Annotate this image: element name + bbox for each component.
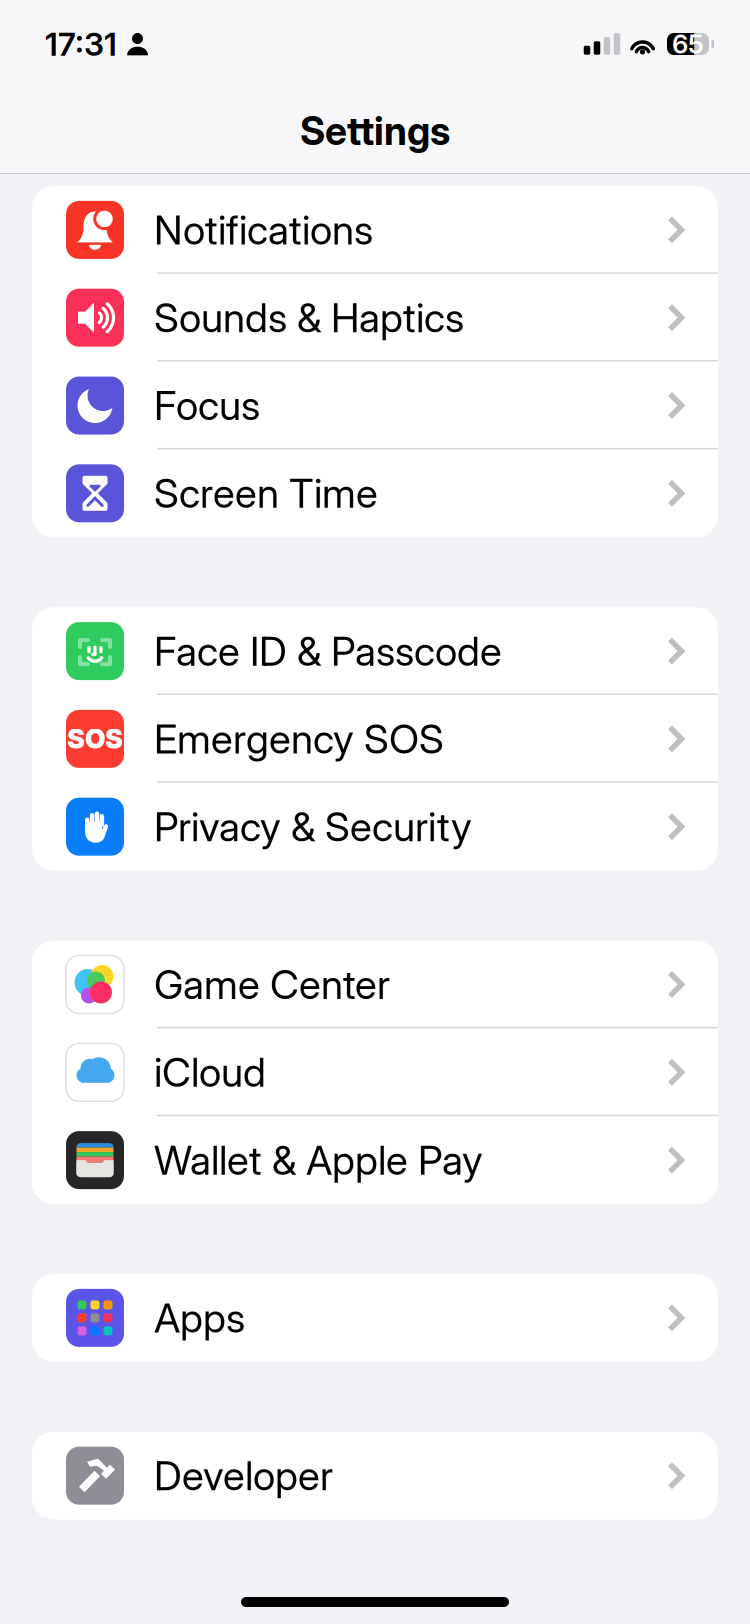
button[interactable]: Apps <box>32 1274 718 1362</box>
staticText: Emergency SOS <box>154 715 444 763</box>
button[interactable]: Developer <box>32 1432 718 1520</box>
button[interactable]: Privacy & Security <box>32 783 718 871</box>
staticText: Face ID & Passcode <box>154 627 502 675</box>
button[interactable]: Wallet & Apple Pay <box>32 1116 718 1204</box>
button[interactable]: iCloud <box>32 1028 718 1116</box>
staticText: Screen Time <box>154 469 378 517</box>
staticText: iCloud <box>154 1048 266 1096</box>
staticText: Settings <box>300 108 450 154</box>
staticText: Developer <box>154 1451 333 1500</box>
staticText: SOS <box>67 723 123 755</box>
staticText: 17:31 <box>45 25 117 63</box>
button[interactable]: Notifications <box>32 186 718 274</box>
staticText: Sounds & Haptics <box>154 293 464 342</box>
staticText: 65 <box>672 28 704 60</box>
staticText: Focus <box>154 381 260 430</box>
button[interactable]: Sounds & Haptics <box>32 274 718 362</box>
button[interactable]: Game Center <box>32 941 718 1028</box>
button[interactable]: Face ID & Passcode <box>32 607 718 695</box>
staticText: Privacy & Security <box>154 802 472 851</box>
staticText: Apps <box>154 1294 245 1342</box>
button[interactable]: Screen Time <box>32 449 718 537</box>
button[interactable]: SOS <box>32 695 718 783</box>
staticText: Game Center <box>154 960 390 1009</box>
button[interactable]: Focus <box>32 362 718 449</box>
staticText: Wallet & Apple Pay <box>154 1136 483 1184</box>
staticText: Notifications <box>154 206 373 254</box>
